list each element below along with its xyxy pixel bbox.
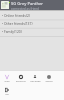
staticText: Settings	[45, 80, 53, 83]
staticText: Family(120)	[4, 29, 22, 33]
staticText: Other friends(137)	[4, 21, 33, 25]
button[interactable]: Share	[0, 70, 14, 83]
button[interactable]: Profile picture	[1, 1, 9, 9]
staticText: connected as friend	[11, 7, 39, 11]
staticText: Exit	[5, 93, 9, 96]
button[interactable]: Other friends(137)	[0, 19, 64, 27]
staticText: Online friends(2)	[4, 13, 30, 17]
button[interactable]: Own profile	[28, 70, 42, 83]
button[interactable]: Refresh list	[14, 70, 28, 83]
staticText: Own profile	[30, 80, 41, 83]
button[interactable]: Online friends(2)	[0, 11, 64, 19]
staticText: SG Grey Panther	[11, 1, 44, 7]
staticText: Refresh list	[16, 80, 26, 83]
staticText: Share	[4, 80, 10, 83]
button[interactable]: Settings	[42, 70, 56, 83]
button[interactable]: Exit	[0, 83, 14, 96]
button[interactable]: Family(120)	[0, 27, 64, 35]
